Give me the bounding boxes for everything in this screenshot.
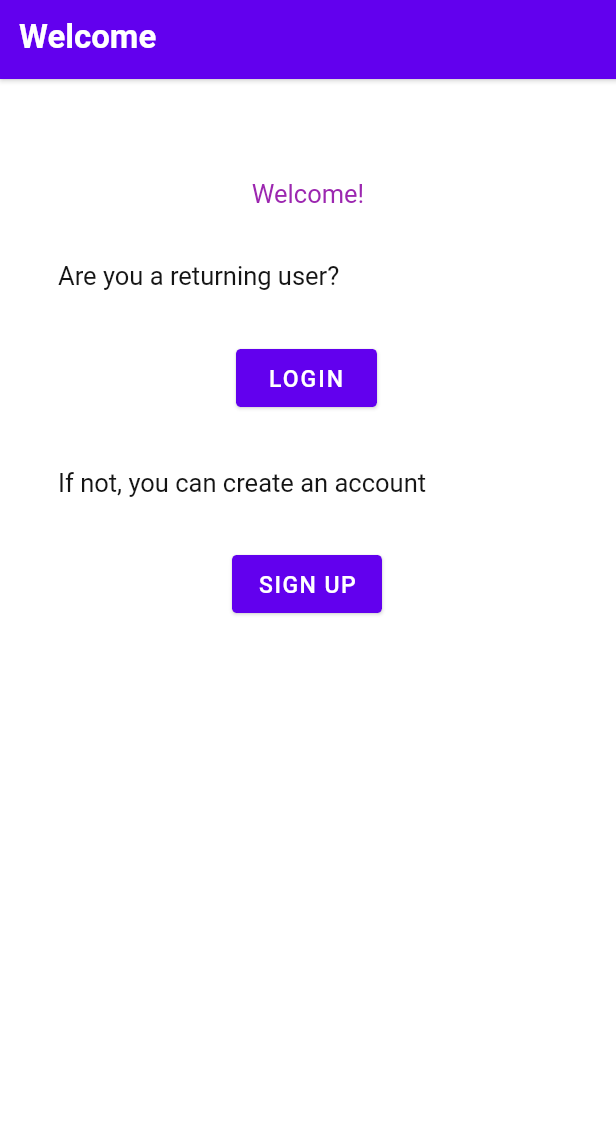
- button[interactable]: LOGIN: [236, 349, 377, 407]
- button[interactable]: SIGN UP: [232, 555, 382, 613]
- staticText: If not, you can create an account: [58, 468, 427, 498]
- staticText: LOGIN: [269, 366, 346, 393]
- staticText: Are you a returning user?: [58, 261, 340, 291]
- staticText: SIGN UP: [259, 572, 358, 599]
- staticText: Welcome!: [0, 179, 616, 209]
- staticText: Welcome: [19, 17, 157, 56]
